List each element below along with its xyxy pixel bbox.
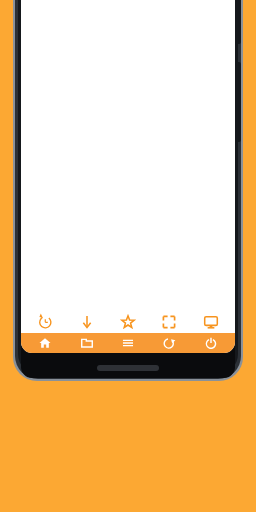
button[interactable]: Bookmarks bbox=[111, 310, 145, 333]
button[interactable]: Home bbox=[28, 333, 62, 353]
button[interactable]: Reload bbox=[152, 333, 186, 353]
button[interactable]: Fullscreen bbox=[152, 310, 186, 333]
button[interactable]: Tabs bbox=[70, 333, 104, 353]
button[interactable]: Menu bbox=[111, 333, 145, 353]
button[interactable]: Downloads bbox=[70, 310, 104, 333]
button[interactable]: Desktop site bbox=[194, 310, 228, 333]
button[interactable]: Exit bbox=[194, 333, 228, 353]
button[interactable]: History bbox=[28, 310, 62, 333]
